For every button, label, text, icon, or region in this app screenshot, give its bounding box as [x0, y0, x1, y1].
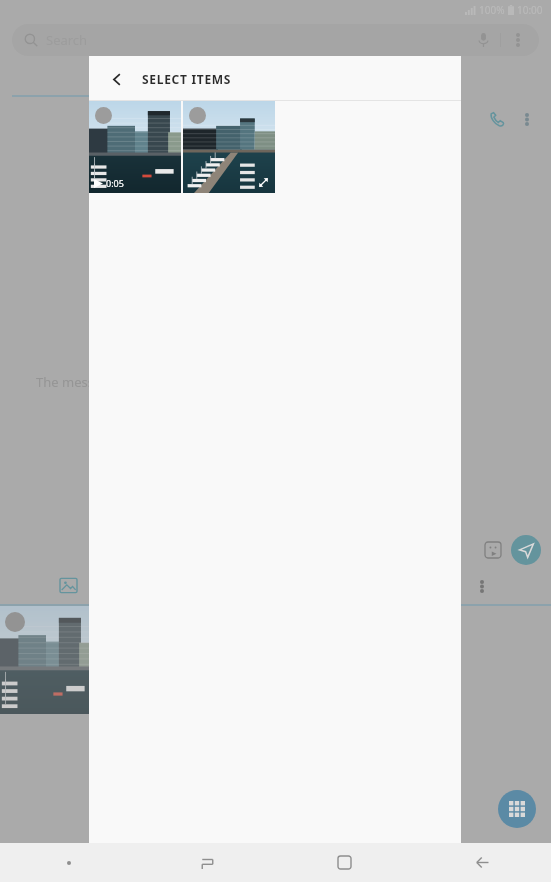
button[interactable]: Send: [511, 535, 541, 565]
button[interactable]: Recents: [184, 843, 230, 882]
button[interactable]: 0:05: [89, 101, 181, 193]
button[interactable]: Stickers: [470, 536, 516, 564]
button[interactable]: Home: [321, 843, 367, 882]
button[interactable]: Back: [459, 843, 505, 882]
staticText: 10:00: [517, 3, 543, 17]
staticText: SELECT ITEMS: [142, 71, 232, 87]
staticText: The messa: [36, 373, 102, 391]
button[interactable]: Call: [484, 106, 510, 132]
staticText: 100%: [479, 3, 505, 17]
button[interactable]: More options: [507, 29, 529, 51]
button[interactable]: Back: [101, 63, 133, 95]
button[interactable]: Menu indicator: [46, 843, 92, 882]
button[interactable]: More options: [470, 574, 494, 598]
button[interactable]: Gallery: [57, 574, 79, 596]
staticText: 0:05: [106, 177, 124, 189]
button[interactable]: Apps: [498, 790, 536, 828]
button[interactable]: [183, 101, 275, 193]
button[interactable]: Voice search: [472, 29, 494, 51]
button[interactable]: More options: [514, 106, 540, 132]
